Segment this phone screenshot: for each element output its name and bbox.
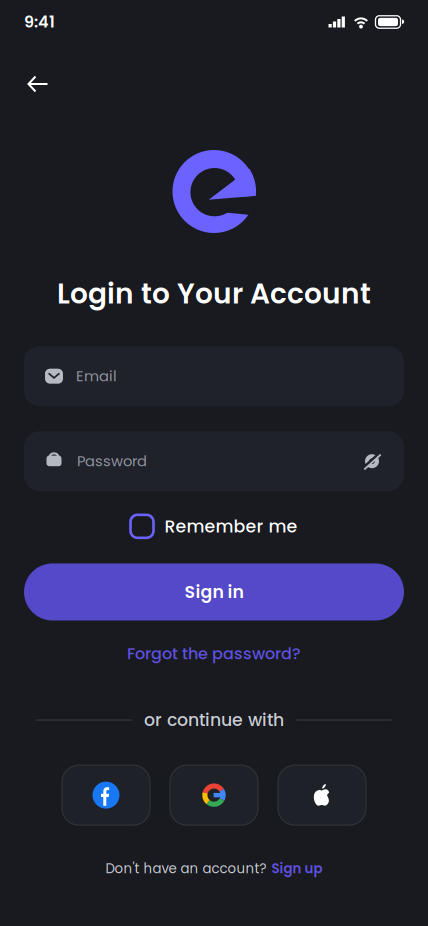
staticText: Login to Your Account xyxy=(57,274,371,313)
button[interactable]: Sign up xyxy=(271,859,322,878)
button[interactable]: Sign in with Google xyxy=(170,765,258,825)
button[interactable]: Password xyxy=(24,431,404,491)
button[interactable]: Sign in xyxy=(24,563,404,620)
staticText: or continue with xyxy=(144,708,284,732)
button[interactable]: Sign in with Facebook xyxy=(62,765,150,825)
staticText: 9:41 xyxy=(24,11,55,33)
button[interactable]: Forgot the password? xyxy=(127,642,301,665)
staticText: Don't have an account? xyxy=(105,859,266,878)
staticText: Email xyxy=(76,366,117,386)
button[interactable]: Back xyxy=(12,62,64,106)
staticText: Sign up xyxy=(271,859,322,878)
staticText: Forgot the password? xyxy=(127,642,301,665)
button[interactable]: Sign in with Apple xyxy=(278,765,366,825)
staticText: Remember me xyxy=(164,514,297,538)
button[interactable]: Email xyxy=(24,346,404,406)
button[interactable]: Remember me xyxy=(130,514,297,538)
staticText: Password xyxy=(77,451,147,471)
staticText: Sign in xyxy=(184,580,243,604)
